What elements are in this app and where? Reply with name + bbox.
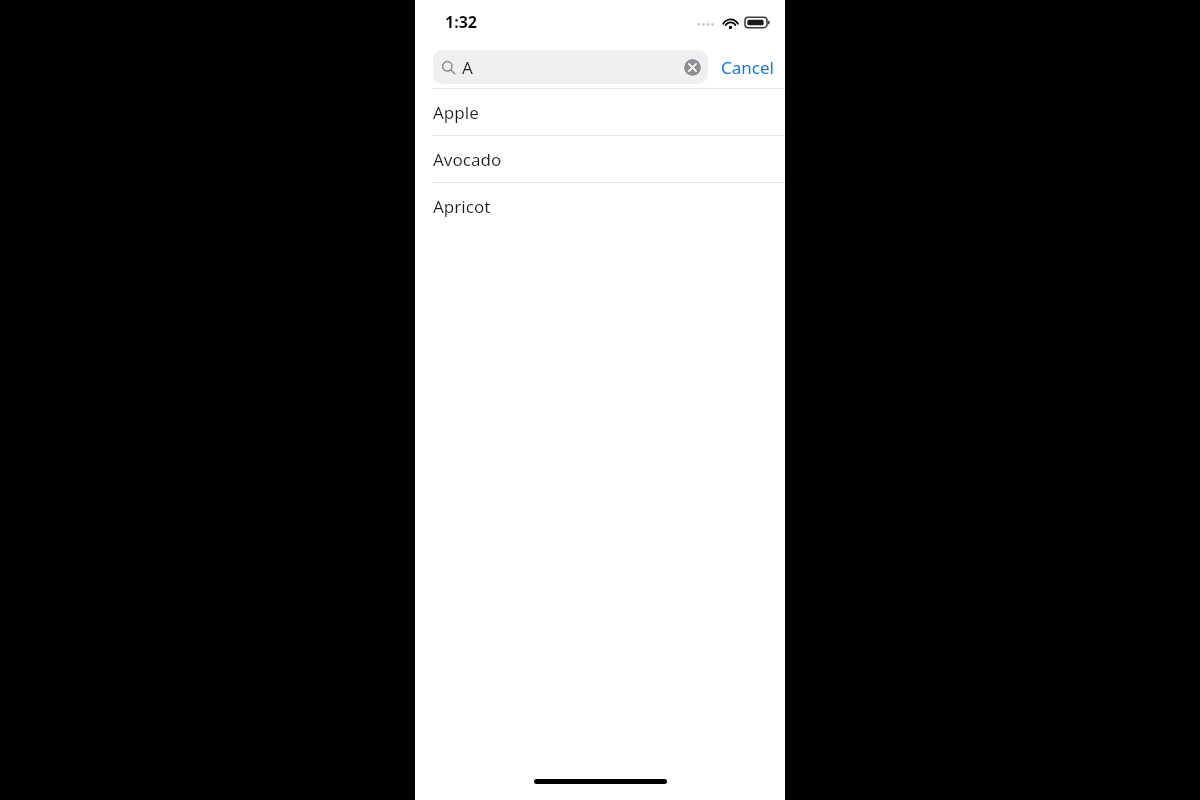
staticText: Apricot [433, 195, 491, 218]
staticText: Avocado [433, 148, 502, 171]
button[interactable]: Apple [415, 89, 785, 135]
button[interactable]: Avocado [415, 136, 785, 182]
staticText: A [462, 56, 473, 79]
button[interactable]: Cancel [720, 53, 775, 82]
staticText: 1:32 [445, 11, 477, 33]
button[interactable]: Apricot [415, 183, 785, 229]
staticText: Apple [433, 101, 479, 124]
button[interactable]: A [433, 50, 708, 84]
button[interactable]: Clear text [684, 59, 701, 76]
staticText: Cancel [721, 56, 774, 79]
